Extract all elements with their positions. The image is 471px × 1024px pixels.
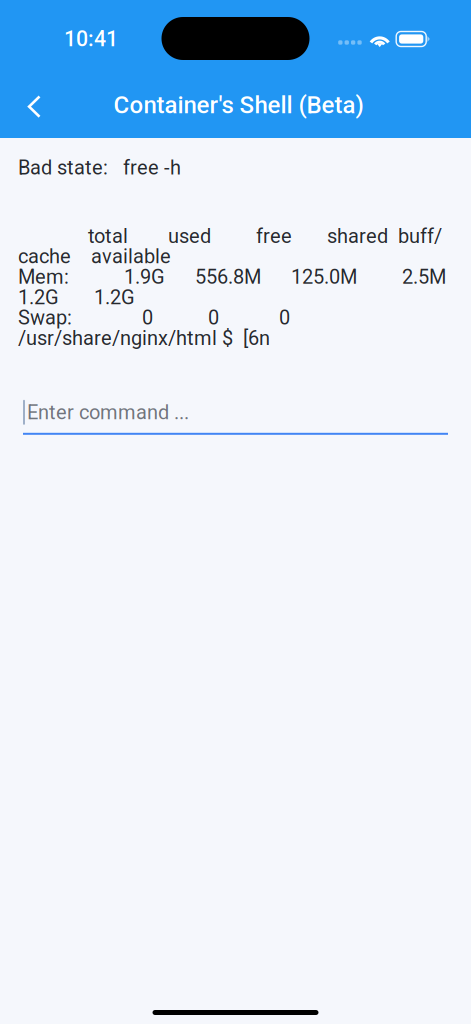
staticText: Enter command ... [27, 401, 189, 424]
staticText: 1.2G 1.2G [18, 286, 135, 309]
staticText: Container's Shell (Beta) [113, 91, 363, 119]
staticText: total used free shared buff/ [18, 224, 442, 248]
button[interactable]: Enter command ... [18, 392, 453, 435]
staticText: /usr/share/nginx/html $ [6n [18, 326, 270, 350]
staticText: Mem: 1.9G 556.8M 125.0M 2.5M [18, 265, 446, 289]
staticText: 10:41 [64, 26, 118, 51]
staticText: Bad state: free -h [18, 156, 181, 179]
button[interactable]: Back [0, 55, 61, 145]
staticText: cache available [18, 245, 171, 268]
staticText: Swap: 0 0 0 [18, 306, 290, 329]
